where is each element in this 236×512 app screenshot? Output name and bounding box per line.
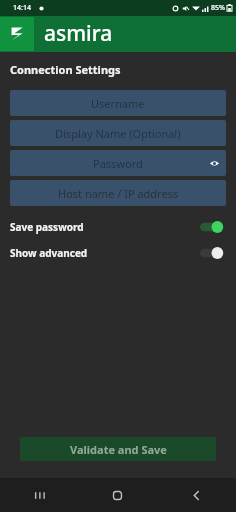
staticText: Save password [10,220,84,234]
staticText: Connection Settings [10,62,121,77]
staticText: Validate and Save [70,442,167,457]
staticText: asmira [44,19,113,48]
button[interactable]: Home [78,478,157,512]
staticText: Password [93,156,143,171]
button[interactable]: Show password [206,155,222,171]
staticText: 85% [211,3,225,13]
button[interactable]: Username [10,90,226,116]
button[interactable]: Back [157,478,236,512]
staticText: Username [91,96,145,111]
staticText: Show advanced [10,246,88,260]
button[interactable]: Host name / IP address [10,180,226,206]
button[interactable]: Display Name (Optional) [10,120,226,146]
staticText: Host name / IP address [58,186,179,201]
button[interactable]: Validate and Save [20,437,216,461]
button[interactable]: Save password [0,219,236,235]
staticText: 14:14 [13,3,31,13]
button[interactable]: Password [10,150,226,176]
button[interactable]: Recent apps [0,478,78,512]
button[interactable]: Show advanced [0,245,236,261]
staticText: Display Name (Optional) [55,126,181,141]
button[interactable]: App logo [0,17,34,51]
